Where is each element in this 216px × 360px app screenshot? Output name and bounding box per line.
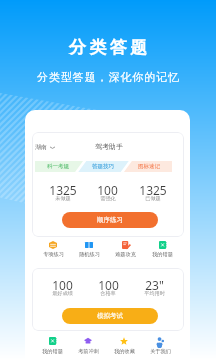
staticText: 1325	[139, 182, 167, 198]
staticText: 模拟考试	[97, 312, 123, 320]
staticText: 需强化	[100, 195, 116, 202]
button[interactable]: 关于我们	[142, 332, 178, 360]
button[interactable]: 1325	[130, 182, 175, 198]
button[interactable]: 难题攻克	[107, 241, 144, 258]
staticText: 专项练习	[43, 251, 64, 258]
button[interactable]: 专项练习	[35, 241, 71, 258]
staticText: 随机练习	[79, 251, 100, 258]
button[interactable]: 答题技巧	[80, 161, 126, 172]
staticText: 科一考规	[47, 163, 69, 170]
button[interactable]: 我的错题	[35, 332, 70, 360]
staticText: 我的错题	[42, 348, 63, 355]
button[interactable]: 考前冲刺	[70, 332, 106, 360]
staticText: 最好成绩	[52, 290, 73, 297]
button[interactable]: 100	[85, 182, 130, 198]
button[interactable]: 我的错题	[144, 241, 181, 258]
staticText: 我的收藏	[114, 348, 135, 355]
staticText: 已做题	[145, 195, 161, 202]
button[interactable]: 科一考规	[35, 161, 80, 172]
staticText: 100	[98, 277, 119, 293]
staticText: 驾考助手	[95, 142, 123, 151]
staticText: 100	[52, 277, 73, 293]
button[interactable]: 随机练习	[71, 241, 107, 258]
staticText: 1325	[49, 182, 77, 198]
staticText: 未做题	[55, 195, 71, 202]
staticText: 考前冲刺	[78, 348, 99, 355]
staticText: 合格率	[100, 290, 116, 297]
button[interactable]: 模拟考试	[62, 308, 158, 324]
staticText: 我的错题	[152, 251, 173, 258]
staticText: 关于我们	[150, 348, 171, 355]
button[interactable]: 23"	[131, 277, 177, 293]
staticText: 23"	[145, 277, 164, 293]
button[interactable]: 图标速记	[126, 161, 172, 172]
button[interactable]: 湖南	[35, 143, 55, 151]
staticText: 顺序练习	[97, 216, 123, 224]
button[interactable]: 100	[85, 277, 131, 293]
staticText: 答题技巧	[92, 163, 114, 170]
staticText: 湖南	[35, 143, 47, 151]
button[interactable]: 1325	[40, 182, 85, 198]
button[interactable]: 顺序练习	[62, 212, 158, 228]
staticText: 图标速记	[138, 163, 160, 170]
button[interactable]: 我的收藏	[106, 332, 142, 360]
staticText: 平均用时	[144, 290, 165, 297]
staticText: 分类型答题，深化你的记忆	[37, 70, 180, 84]
button[interactable]: 100	[39, 277, 85, 293]
staticText: 100	[97, 182, 118, 198]
staticText: 难题攻克	[115, 251, 136, 258]
staticText: 分类答题	[67, 37, 149, 58]
